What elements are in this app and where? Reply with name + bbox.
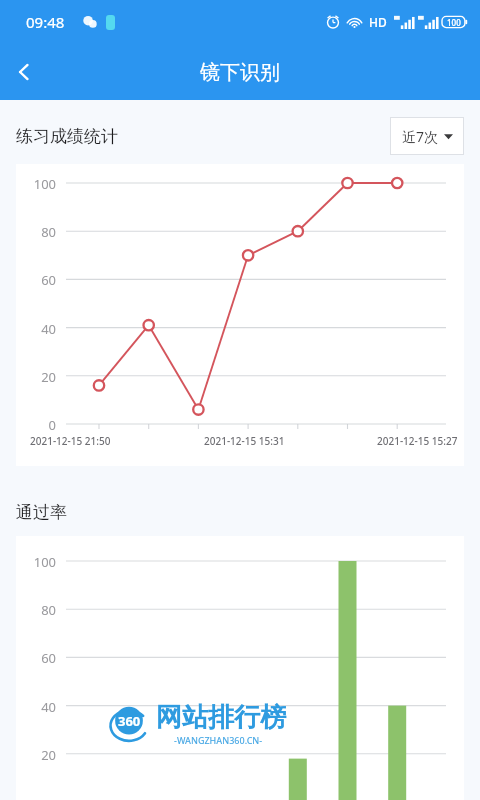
staticText: 80	[16, 223, 56, 241]
staticText: 近7次	[402, 127, 439, 146]
staticText: 09:48	[26, 12, 65, 32]
staticText: 100	[447, 17, 461, 28]
staticText: 网站排行榜	[156, 701, 286, 734]
staticText: 通过率	[16, 502, 67, 523]
staticText: 2021-12-15 21:50	[30, 434, 111, 448]
staticText: -WANGZHAN360.CN-	[174, 734, 263, 746]
staticText: 100	[16, 553, 56, 571]
staticText: 60	[16, 271, 56, 289]
staticText: HD	[369, 14, 387, 30]
button[interactable]: 近7次	[390, 117, 464, 155]
staticText: 80	[16, 601, 56, 619]
staticText: 40	[16, 698, 56, 716]
staticText: 40	[16, 320, 56, 338]
staticText: 2021-12-15 15:27	[377, 434, 458, 448]
staticText: 60	[16, 649, 56, 667]
staticText: 20	[16, 746, 56, 764]
button[interactable]: Back	[0, 48, 48, 96]
staticText: 360	[118, 712, 141, 730]
staticText: 100	[16, 175, 56, 193]
staticText: 0	[16, 416, 56, 434]
staticText: 练习成绩统计	[16, 126, 118, 147]
staticText: 20	[16, 368, 56, 386]
staticText: 2021-12-15 15:31	[204, 434, 285, 448]
staticText: 镜下识别	[200, 60, 280, 85]
